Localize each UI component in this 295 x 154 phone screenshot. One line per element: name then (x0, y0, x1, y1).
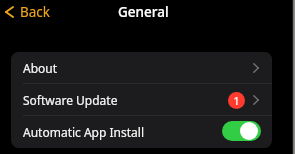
button[interactable]: Automatic App Install, on (222, 121, 261, 141)
button[interactable]: Automatic App Install (11, 116, 272, 148)
staticText: 1 (233, 94, 240, 108)
staticText: Back (20, 3, 51, 21)
button[interactable]: About (11, 52, 272, 84)
staticText: Automatic App Install (23, 124, 144, 140)
button[interactable]: Back (4, 2, 52, 22)
staticText: About (23, 60, 58, 76)
button[interactable]: Software Update (11, 84, 272, 116)
staticText: General (118, 3, 169, 21)
staticText: Software Update (23, 92, 118, 108)
